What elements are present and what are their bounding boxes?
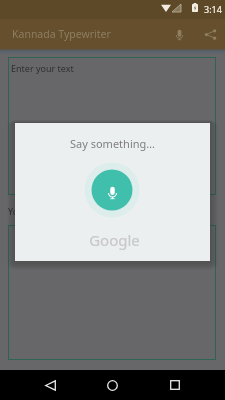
button[interactable]: Back	[33, 372, 67, 398]
button[interactable]: Home	[95, 372, 129, 398]
staticText: Say something…	[15, 136, 210, 151]
button[interactable]: Microphone	[84, 162, 140, 218]
staticText: Google	[17, 230, 212, 250]
staticText: Your text	[8, 205, 46, 217]
button[interactable]: Recent apps	[158, 372, 192, 398]
button[interactable]: Voice input	[164, 19, 194, 49]
staticText: 3:14	[204, 3, 222, 15]
staticText: Enter your text	[11, 62, 74, 74]
button[interactable]: Share	[195, 19, 225, 49]
staticText: Kannada Typewriter	[12, 27, 165, 41]
